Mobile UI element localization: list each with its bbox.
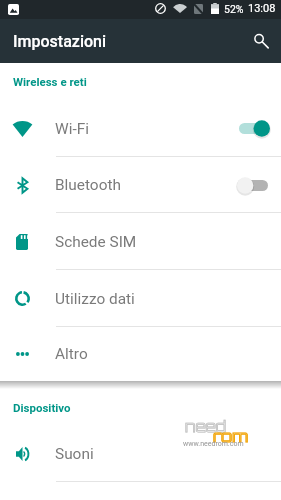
- button[interactable]: Disattivo: [239, 177, 268, 194]
- staticText: Utilizzo dati: [55, 290, 135, 308]
- staticText: 52%: [224, 3, 244, 15]
- staticText: 13:08: [248, 2, 276, 15]
- staticText: Dispositivo: [13, 401, 71, 414]
- button[interactable]: Wi-Fi: [0, 100, 281, 157]
- staticText: Suoni: [55, 445, 94, 463]
- staticText: Impostazioni: [13, 32, 107, 51]
- staticText: www.needrom.com: [183, 440, 244, 448]
- staticText: Wireless e reti: [13, 75, 87, 88]
- staticText: rom: [213, 426, 248, 446]
- staticText: Wi-Fi: [55, 120, 89, 138]
- staticText: need: [185, 417, 226, 436]
- button[interactable]: Altro: [0, 327, 281, 381]
- button[interactable]: Suoni: [0, 426, 281, 482]
- staticText: Schede SIM: [55, 233, 137, 251]
- button[interactable]: Cerca: [246, 26, 276, 56]
- staticText: Bluetooth: [55, 176, 121, 194]
- button[interactable]: Bluetooth: [0, 157, 281, 213]
- button[interactable]: Utilizzo dati: [0, 270, 281, 327]
- button[interactable]: Schede SIM: [0, 213, 281, 270]
- staticText: Altro: [55, 345, 88, 363]
- button[interactable]: Attivo: [239, 120, 268, 137]
